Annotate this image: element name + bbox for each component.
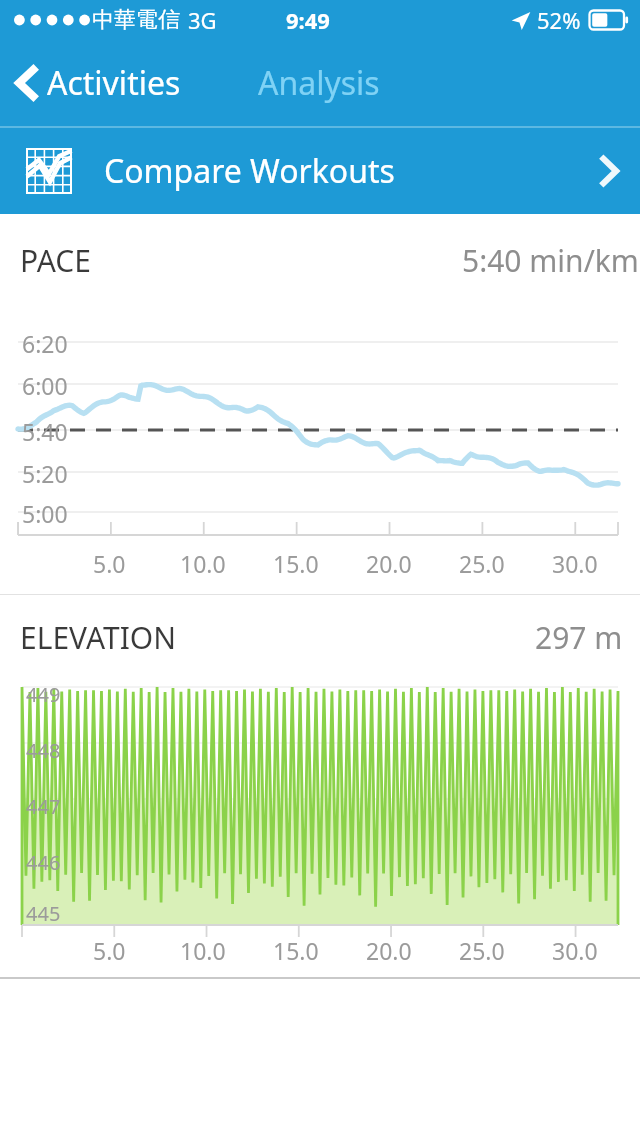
- staticText: 15.0: [273, 935, 319, 966]
- staticText: 30.0: [552, 935, 598, 966]
- staticText: 5:40: [22, 416, 68, 447]
- staticText: 449: [26, 681, 61, 708]
- staticText: Activities: [47, 61, 181, 105]
- staticText: 25.0: [459, 548, 505, 579]
- other: Back: [16, 65, 38, 101]
- staticText: 20.0: [366, 935, 412, 966]
- staticText: 446: [26, 849, 61, 876]
- staticText: 中華電信: [92, 6, 180, 34]
- staticText: 297 m: [535, 617, 623, 658]
- staticText: 25.0: [459, 935, 505, 966]
- staticText: 3G: [188, 5, 217, 35]
- other: Location: [510, 10, 531, 31]
- staticText: 10.0: [180, 935, 226, 966]
- staticText: 15.0: [273, 548, 319, 579]
- staticText: 20.0: [366, 548, 412, 579]
- staticText: 5.0: [93, 935, 126, 966]
- staticText: 448: [26, 737, 61, 764]
- staticText: 52%: [537, 5, 581, 35]
- staticText: 5.0: [93, 548, 126, 579]
- staticText: 6:20: [22, 328, 68, 359]
- other: Open Compare Workouts: [599, 155, 618, 187]
- staticText: 30.0: [552, 548, 598, 579]
- staticText: PACE: [20, 240, 91, 281]
- button[interactable]: Compare Workouts: [0, 128, 640, 214]
- staticText: Analysis: [258, 61, 380, 105]
- staticText: 6:00: [22, 370, 68, 401]
- staticText: 5:00: [22, 498, 68, 529]
- staticText: 445: [26, 900, 61, 927]
- staticText: 9:49: [286, 5, 330, 35]
- staticText: 447: [26, 793, 61, 820]
- staticText: 5:40 min/km: [462, 240, 639, 281]
- staticText: Compare Workouts: [104, 149, 395, 193]
- staticText: ELEVATION: [20, 617, 177, 658]
- button[interactable]: Back: [0, 47, 191, 119]
- staticText: 5:20: [22, 458, 68, 489]
- staticText: 10.0: [180, 548, 226, 579]
